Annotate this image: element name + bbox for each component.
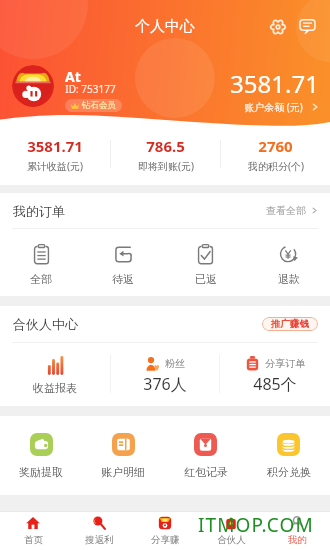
staticText: At (65, 67, 81, 86)
staticText: 已返 (195, 272, 217, 286)
button[interactable]: 收益报表 (0, 349, 110, 401)
staticText: 485个 (253, 373, 297, 395)
button[interactable]: 3581.71 (230, 67, 319, 114)
button[interactable]: 3581.71 (0, 136, 110, 172)
staticText: 即将到账(元) (138, 159, 194, 172)
staticText: 我的积分(个) (248, 159, 304, 172)
staticText: 合伙人中心 (13, 316, 78, 332)
staticText: 我的 (288, 534, 307, 546)
button[interactable]: 2760 (221, 136, 330, 172)
button[interactable]: 钻石会员 (65, 99, 122, 112)
button[interactable]: Messages (295, 14, 320, 39)
staticText: 账户余额 (元) (244, 100, 303, 114)
staticText: 粉丝 (165, 357, 185, 370)
staticText: 搜返利 (85, 534, 114, 546)
button[interactable]: Avatar (12, 65, 54, 107)
staticText: ITMOP.COM (198, 512, 314, 538)
staticText: 个人中心 (135, 17, 195, 36)
button[interactable]: Settings (265, 14, 290, 39)
staticText: 3581.71 (230, 67, 319, 100)
button[interactable]: 账户明细 (82, 416, 164, 495)
button[interactable]: 搜返利 (66, 512, 132, 550)
staticText: 786.5 (146, 136, 185, 156)
button[interactable]: 积分兑换 (247, 416, 330, 495)
button[interactable]: 分享订单 (220, 349, 330, 401)
button[interactable]: 推广赚钱 (262, 317, 318, 331)
staticText: 钻石会员 (82, 100, 116, 111)
staticText: 2760 (258, 136, 293, 156)
button[interactable]: 首页 (0, 512, 66, 550)
staticText: 3581.71 (27, 136, 83, 156)
button[interactable]: 我的 (264, 512, 330, 550)
staticText: 376人 (143, 373, 187, 395)
staticText: 收益报表 (33, 381, 77, 395)
staticText: 全部 (30, 272, 52, 286)
staticText: 账户明细 (101, 465, 145, 479)
button[interactable]: 分享赚 (132, 512, 198, 550)
button[interactable]: 全部 (0, 237, 82, 293)
staticText: 红包记录 (184, 465, 228, 479)
button[interactable]: 红包记录 (164, 416, 247, 495)
staticText: 首页 (24, 534, 43, 546)
button[interactable]: 待返 (82, 237, 164, 293)
staticText: 分享赚 (151, 534, 180, 546)
staticText: 积分兑换 (267, 465, 311, 479)
button[interactable]: 合伙人 (198, 512, 264, 550)
button[interactable]: 786.5 (111, 136, 220, 172)
button[interactable]: 查看全部 (266, 204, 318, 217)
staticText: 我的订单 (13, 203, 65, 219)
button[interactable]: 粉丝 (110, 349, 220, 401)
staticText: 查看全部 (266, 204, 306, 217)
staticText: ID: 753177 (65, 82, 116, 96)
button[interactable]: 已返 (164, 237, 247, 293)
staticText: 退款 (278, 272, 300, 286)
staticText: 推广赚钱 (271, 318, 309, 330)
button[interactable]: 奖励提取 (0, 416, 82, 495)
staticText: 合伙人 (217, 534, 246, 546)
staticText: 累计收益(元) (27, 159, 83, 172)
staticText: 分享订单 (265, 357, 305, 370)
button[interactable]: 退款 (247, 237, 330, 293)
staticText: 奖励提取 (19, 465, 63, 479)
staticText: 待返 (112, 272, 134, 286)
